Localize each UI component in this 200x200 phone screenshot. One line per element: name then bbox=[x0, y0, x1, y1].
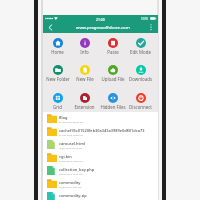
staticText: Hidden Files bbox=[100, 104, 126, 110]
staticText: 20 Feb 2019 12:00 AM bbox=[59, 160, 83, 163]
button[interactable]: commodity bbox=[43, 177, 158, 190]
staticText: 16 Jun 2018 08:15 AM bbox=[59, 147, 83, 150]
button[interactable]: Hidden Files bbox=[99, 93, 126, 110]
staticText: 05 Oct 2019 10:14 AM bbox=[59, 173, 83, 176]
staticText: Extension bbox=[74, 104, 95, 110]
button[interactable]: collection_bay.php bbox=[43, 164, 158, 177]
staticText: Grid bbox=[53, 104, 62, 110]
staticText: 02 Jul 2018 12:00 AM bbox=[59, 186, 82, 189]
button[interactable]: commodity.zip bbox=[43, 190, 158, 200]
staticText: commodity bbox=[59, 180, 81, 185]
button[interactable]: Downloads bbox=[127, 65, 154, 82]
button[interactable]: Disconnect bbox=[127, 93, 154, 110]
button[interactable]: New Folder bbox=[44, 65, 71, 82]
staticText: 100% bbox=[141, 17, 149, 21]
button[interactable]: Upload File bbox=[99, 65, 126, 82]
staticText: New File bbox=[76, 76, 94, 82]
staticText: carousel.html bbox=[59, 141, 85, 146]
staticText: 21:00 bbox=[96, 17, 105, 22]
staticText: Downloads bbox=[129, 76, 152, 82]
staticText: Paste bbox=[107, 49, 119, 55]
staticText: Home bbox=[51, 49, 64, 55]
button[interactable]: Blog bbox=[43, 112, 158, 125]
button[interactable]: cachef35c01520feb30a343a3989e0d801dca73 bbox=[43, 125, 158, 138]
staticText: New Folder bbox=[46, 76, 70, 82]
button[interactable]: Home bbox=[44, 38, 71, 55]
staticText: 07 May 2018 08:20 PM bbox=[59, 121, 84, 124]
staticText: cachef35c01520feb30a343a3989e0d801dca73 bbox=[59, 128, 145, 133]
button[interactable]: Back bbox=[45, 22, 56, 33]
button[interactable]: Paste bbox=[99, 38, 126, 55]
staticText: Disconnect bbox=[129, 104, 152, 110]
staticText: Upload File bbox=[101, 76, 125, 82]
staticText: commodity.zip bbox=[59, 193, 87, 198]
staticText: Info bbox=[80, 49, 89, 55]
button[interactable]: Extension bbox=[71, 93, 98, 110]
staticText: Blog bbox=[59, 115, 68, 120]
button[interactable]: Info bbox=[71, 38, 98, 55]
button[interactable]: More options bbox=[146, 22, 156, 32]
button[interactable]: Edit Mode bbox=[127, 38, 154, 55]
staticText: cgi-bin bbox=[59, 154, 72, 159]
staticText: www.pragmaoffshore.com bbox=[76, 24, 130, 30]
staticText: 01 Dec 2019 10:50 AM bbox=[59, 134, 83, 137]
staticText: Edit Mode bbox=[130, 49, 151, 55]
button[interactable]: carousel.html bbox=[43, 138, 158, 151]
button[interactable]: Grid bbox=[44, 93, 71, 110]
staticText: collection_bay.php bbox=[59, 167, 95, 172]
button[interactable]: cgi-bin bbox=[43, 151, 158, 164]
button[interactable]: New File bbox=[71, 65, 98, 82]
